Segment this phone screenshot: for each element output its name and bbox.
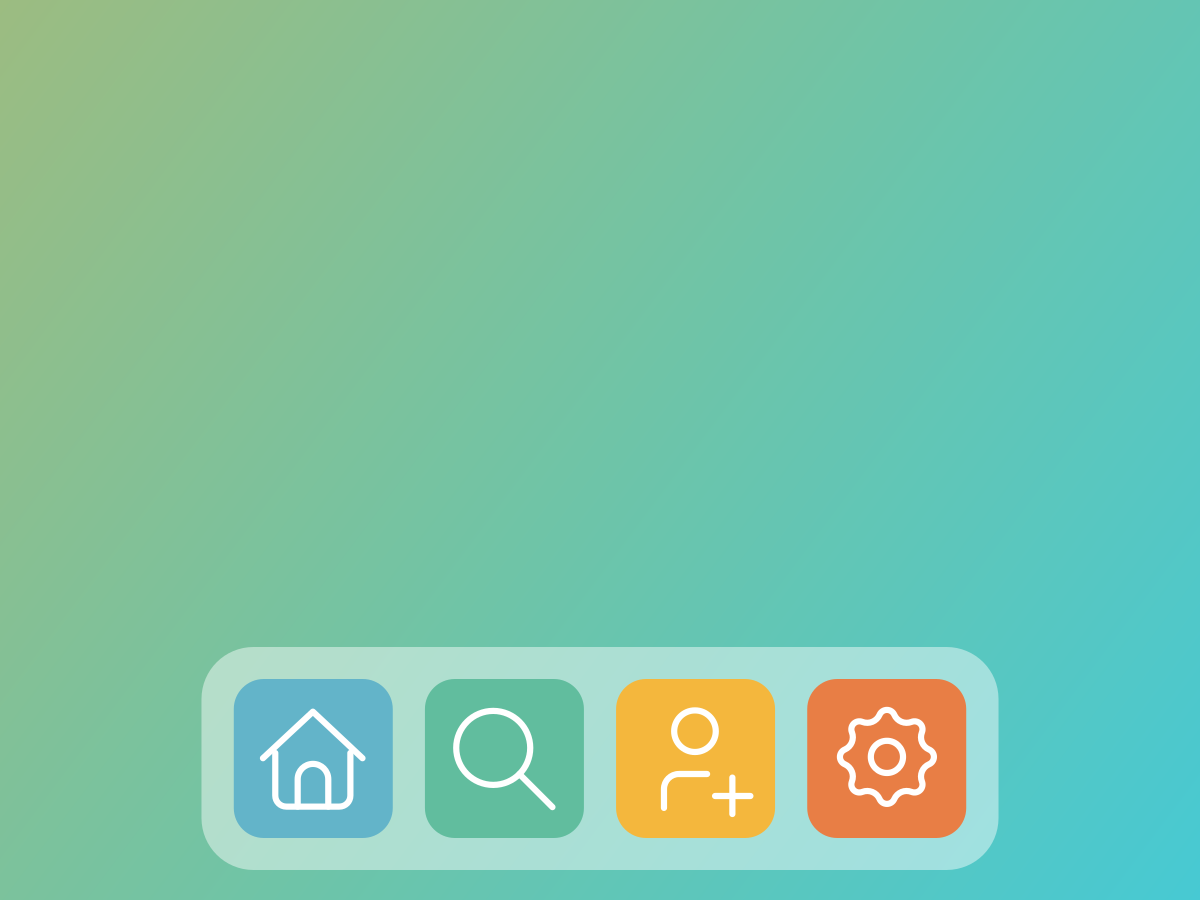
- button[interactable]: Settings: [807, 679, 966, 838]
- button[interactable]: Add person: [616, 679, 775, 838]
- button[interactable]: Search: [425, 679, 584, 838]
- button[interactable]: Home: [234, 679, 393, 838]
